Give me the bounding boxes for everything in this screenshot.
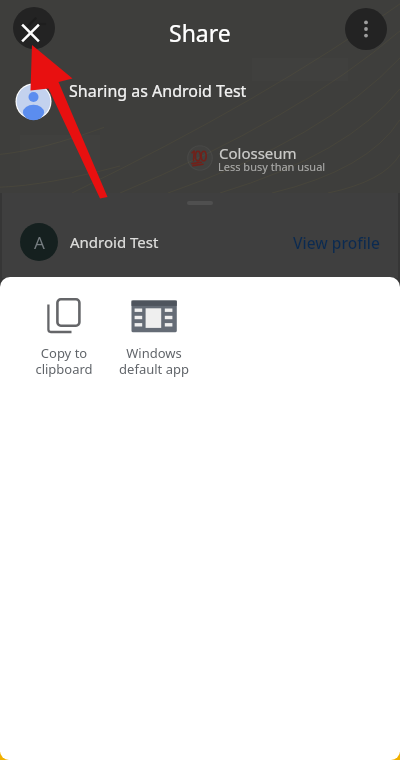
button[interactable]: More options [345, 8, 387, 50]
button[interactable]: A [2, 219, 398, 265]
staticText: Share [169, 17, 231, 48]
staticText: Windows default app [119, 344, 189, 377]
staticText: Colosseum [219, 143, 297, 163]
staticText: A [34, 231, 45, 254]
staticText: Android Test [70, 232, 159, 252]
staticText: View profile [293, 232, 380, 253]
staticText: Less busy than usual [218, 159, 326, 174]
button[interactable]: Copy to clipboard [19, 277, 109, 383]
button[interactable]: View profile [285, 224, 388, 261]
button[interactable]: Close [13, 7, 55, 49]
staticText: Copy to clipboard [35, 344, 93, 377]
staticText: Sharing as Android Test [69, 80, 247, 102]
button[interactable]: Windows default app [109, 277, 199, 383]
